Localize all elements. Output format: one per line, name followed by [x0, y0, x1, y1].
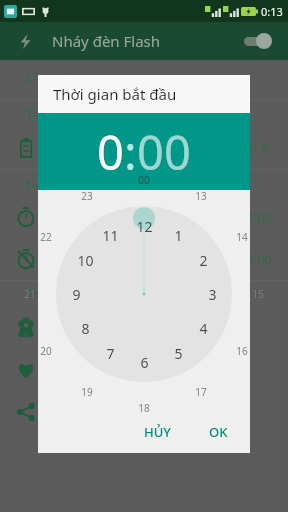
staticText: 00 — [137, 120, 191, 184]
staticText: 14 — [236, 230, 248, 244]
staticText: 23 — [81, 189, 93, 203]
button[interactable]: HEART — [0, 349, 288, 391]
staticText: 17 — [195, 385, 207, 399]
button[interactable]: HỦY — [132, 414, 183, 450]
button[interactable]: TIMER — [0, 196, 288, 238]
button[interactable]: OK — [197, 414, 240, 450]
staticText: HỦY — [144, 423, 171, 441]
staticText: 1 — [174, 226, 183, 244]
staticText: 12 — [136, 217, 153, 235]
button[interactable]: SHARE — [0, 391, 288, 433]
other: FLOWER — [16, 318, 36, 338]
staticText: 3 — [208, 285, 217, 303]
button[interactable]: Bộ chọn giờ — [56, 206, 232, 382]
button[interactable]: Bật tắt nháy đèn Flash — [240, 30, 276, 52]
staticText: Nháy đèn Flash — [52, 31, 161, 51]
staticText: 11 — [102, 226, 119, 244]
staticText: 0:00 — [246, 208, 272, 226]
staticText: 22 — [40, 230, 52, 244]
staticText: 6 — [140, 353, 149, 371]
staticText: 50 % — [242, 139, 272, 157]
staticText: 0:00 — [246, 250, 272, 268]
staticText: 13 — [195, 189, 207, 203]
button[interactable]: FLOWER — [0, 307, 288, 349]
staticText: 2 — [199, 251, 208, 269]
staticText: 19 — [81, 385, 93, 399]
staticText: 5 — [174, 344, 183, 362]
staticText: : — [124, 120, 137, 184]
other: TIMER_OFF — [16, 249, 36, 269]
staticText: 00 — [138, 173, 150, 187]
staticText: 21 — [24, 287, 36, 301]
staticText: 20 — [40, 344, 52, 358]
button[interactable]: TIMER_OFF — [0, 238, 288, 280]
staticText: Tắt — [26, 105, 45, 123]
other: TIMER — [16, 207, 36, 227]
staticText: 0:13 — [261, 4, 283, 19]
staticText: 18 — [138, 401, 150, 415]
other: SHARE — [16, 402, 36, 422]
staticText: Thời gian bắt đầu — [53, 84, 177, 104]
other: BATTERY — [16, 138, 36, 158]
staticText: 0 — [97, 120, 124, 184]
staticText: Thông — [26, 285, 66, 303]
staticText: 10 — [77, 251, 94, 269]
staticText: 4 — [199, 319, 208, 337]
staticText: OK — [209, 423, 228, 441]
staticText: 8 — [81, 319, 90, 337]
button[interactable]: BATTERY — [0, 127, 288, 169]
staticText: Chọn ứng dụng — [26, 68, 122, 86]
staticText: 7 — [106, 344, 115, 362]
staticText: 16 — [236, 344, 248, 358]
staticText: Đặt — [26, 174, 48, 192]
other: HEART — [16, 360, 36, 380]
staticText: 9 — [72, 285, 81, 303]
staticText: 15 — [252, 287, 264, 301]
